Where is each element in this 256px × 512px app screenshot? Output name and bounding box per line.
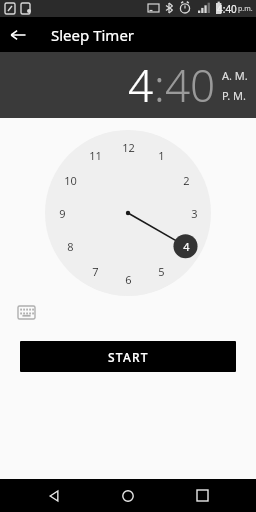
staticText: A. M. xyxy=(222,68,248,83)
button[interactable]: A. M. xyxy=(222,68,248,83)
staticText: 10 xyxy=(64,173,77,188)
button[interactable]: Switch to text input xyxy=(14,300,38,324)
staticText: Sleep Timer xyxy=(51,25,135,45)
button[interactable]: Home xyxy=(108,479,148,512)
staticText: 6 xyxy=(125,272,132,287)
button[interactable]: START xyxy=(20,341,236,372)
staticText: 12 xyxy=(122,140,135,155)
staticText: 9 xyxy=(59,206,66,221)
staticText: 7 xyxy=(92,264,99,279)
staticText: 4:40 xyxy=(217,2,237,16)
button[interactable]: Clock dial xyxy=(45,130,211,296)
staticText: 3 xyxy=(191,206,198,221)
staticText: START xyxy=(108,349,149,365)
staticText: p.m. xyxy=(238,4,253,14)
button[interactable]: Back xyxy=(34,479,74,512)
staticText: : xyxy=(154,55,165,115)
button[interactable]: Back xyxy=(0,17,35,52)
button[interactable]: 40 xyxy=(165,55,216,115)
button[interactable]: 4 xyxy=(128,55,154,115)
staticText: 4 xyxy=(183,239,190,254)
staticText: 8 xyxy=(67,239,74,254)
button[interactable]: P. M. xyxy=(222,88,246,103)
button[interactable]: Recent apps xyxy=(182,479,222,512)
staticText: P. M. xyxy=(222,88,246,103)
staticText: 2 xyxy=(183,173,190,188)
staticText: 1 xyxy=(158,148,165,163)
staticText: 5 xyxy=(158,264,165,279)
staticText: 11 xyxy=(89,148,102,163)
